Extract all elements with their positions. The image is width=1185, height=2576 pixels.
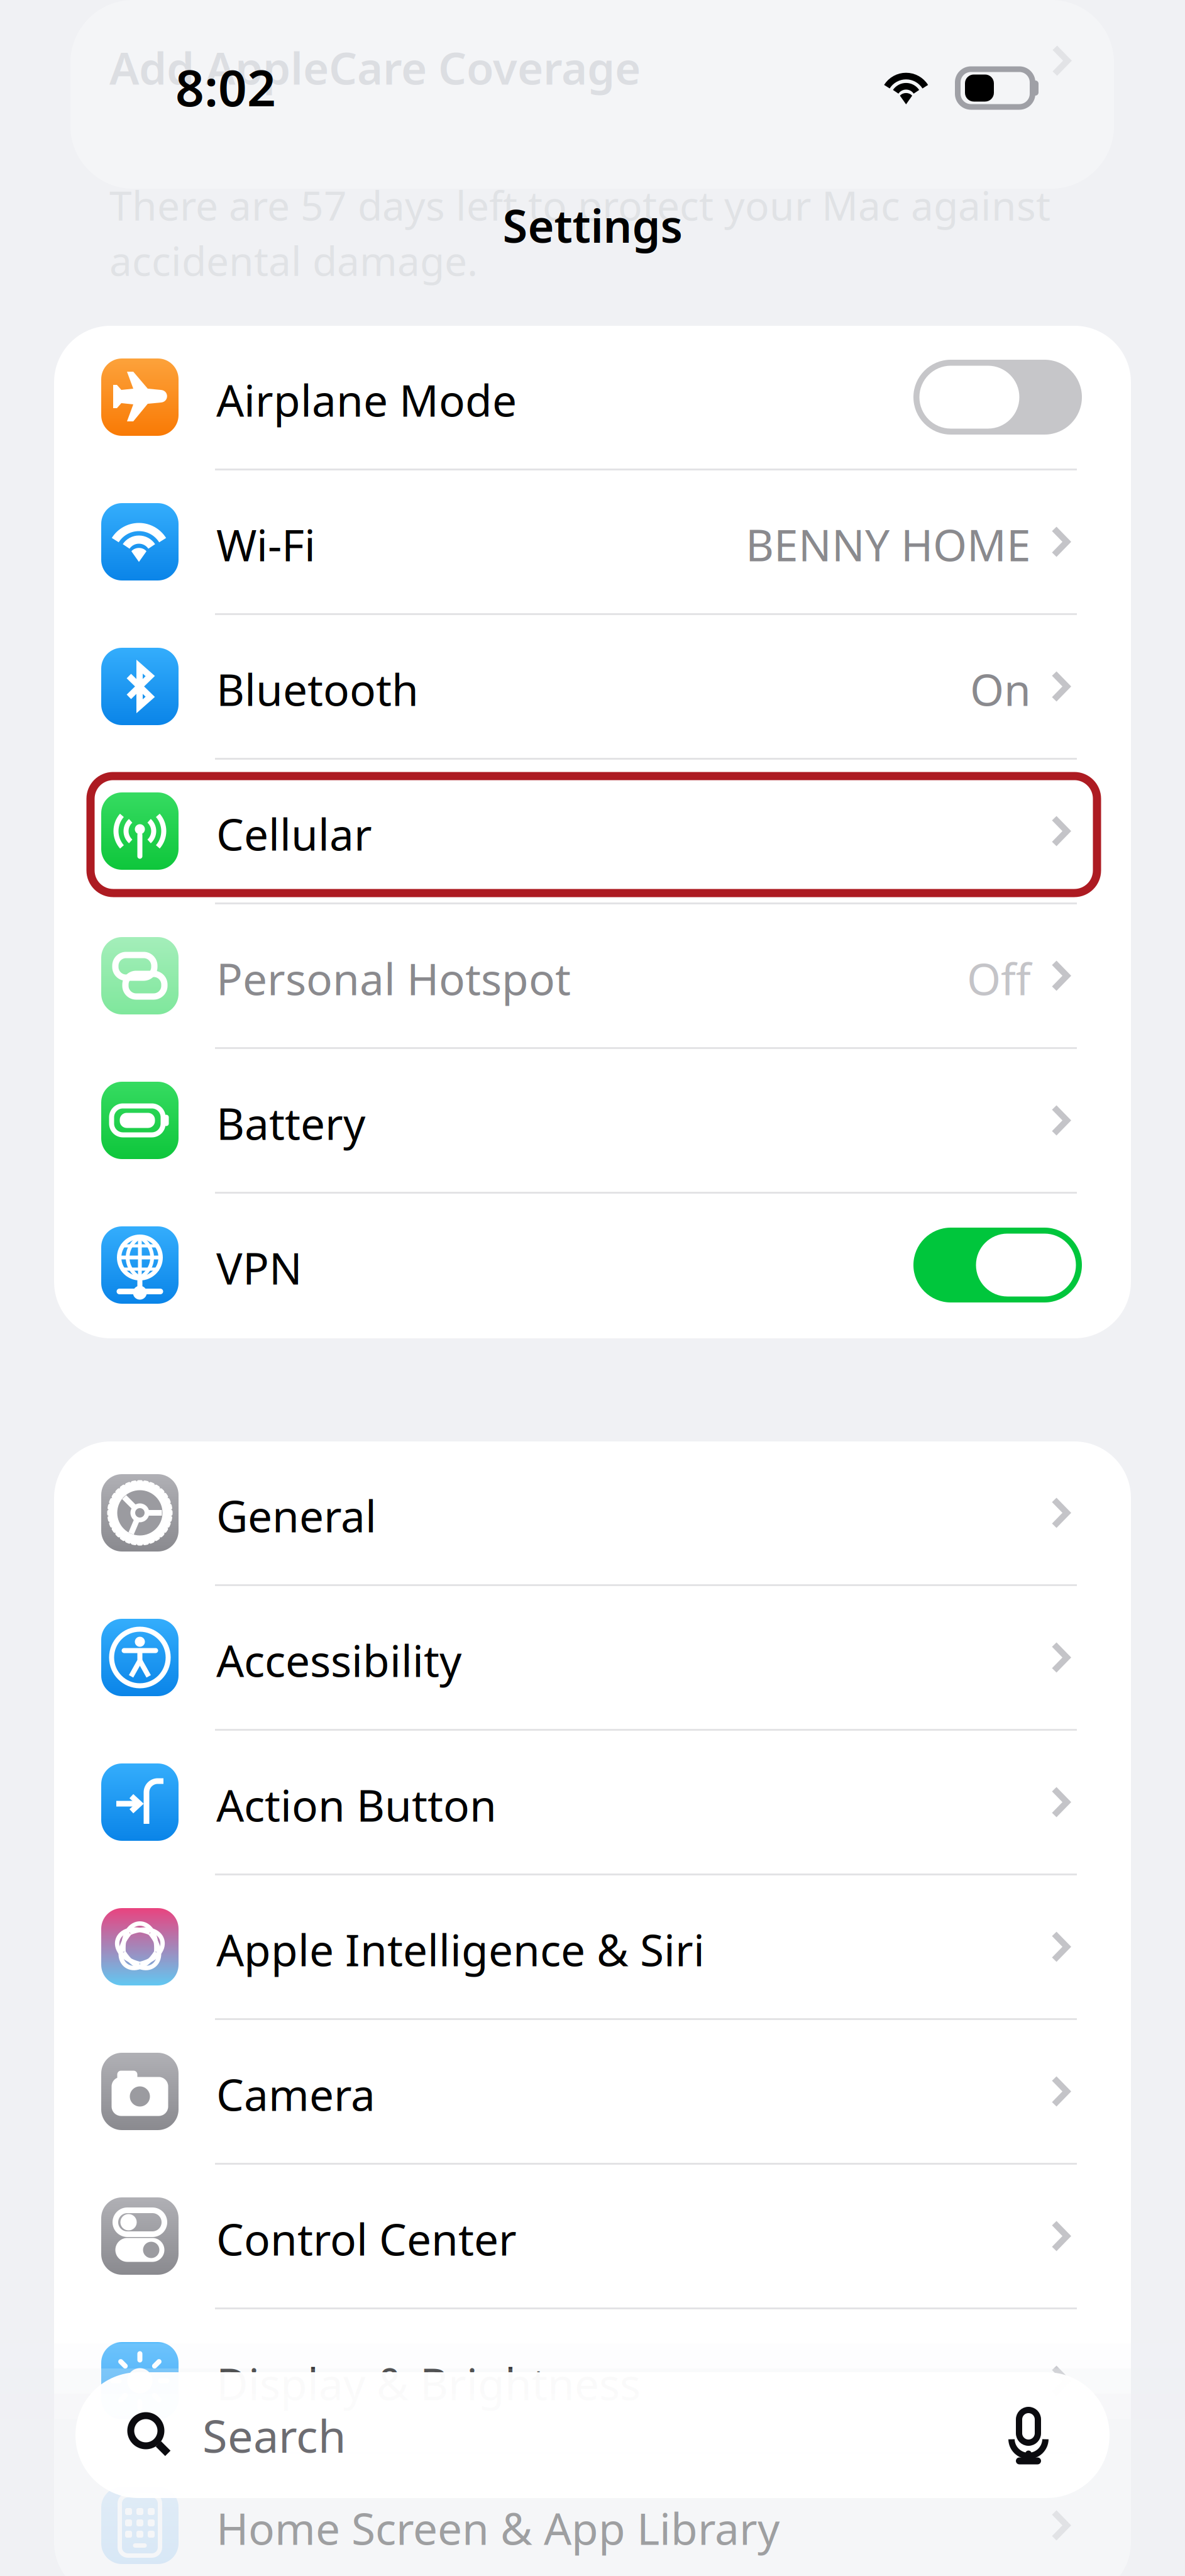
staticText: Wi-Fi [216,515,316,573]
staticText: Off [967,949,1031,1007]
staticText: General [216,1486,377,1544]
button[interactable]: Control Center [54,2165,1131,2309]
staticText: Bluetooth [216,660,419,718]
staticText: BENNY HOME [746,515,1031,573]
staticText: 8:02 [175,53,276,120]
staticText: Battery [216,1094,365,1152]
staticText: Search [202,2405,346,2465]
staticText: Display & Brightness [216,2354,641,2412]
staticText: Personal Hotspot [216,949,571,1007]
staticText: On [970,660,1031,718]
button[interactable]: Airplane Mode [54,326,1131,470]
button[interactable]: General [54,1441,1131,1586]
button[interactable]: Battery [54,1049,1131,1194]
button[interactable]: Accessibility [54,1586,1131,1731]
button[interactable]: VPN [54,1194,1131,1338]
staticText: Action Button [216,1776,497,1834]
button[interactable]: Home Screen & App Library [54,2454,1131,2576]
staticText: Cellular [216,805,372,863]
staticText: Apple Intelligence & Siri [216,1920,705,1978]
staticText: Home Screen & App Library [216,2499,780,2557]
staticText: Settings [503,195,682,255]
button[interactable]: Camera [54,2020,1131,2165]
button[interactable]: Display & Brightness [54,2309,1131,2454]
button[interactable]: Search [75,2372,1110,2498]
button[interactable]: Apple Intelligence & Siri [54,1875,1131,2020]
staticText: Add AppleCare Coverage [109,38,641,97]
button[interactable]: Bluetooth [54,615,1131,760]
staticText: Airplane Mode [216,371,517,429]
button[interactable]: Wi-Fi [54,470,1131,615]
staticText: Camera [216,2065,375,2123]
staticText: accidental damage. [109,234,478,287]
button[interactable]: Action Button [54,1731,1131,1875]
button[interactable]: Cellular [54,760,1131,904]
staticText: VPN [216,1239,302,1297]
staticText: Accessibility [216,1631,461,1689]
staticText: Control Center [216,2210,517,2268]
staticText: There are 57 days left to protect your M… [109,178,1050,232]
button[interactable]: Personal Hotspot [54,904,1131,1049]
